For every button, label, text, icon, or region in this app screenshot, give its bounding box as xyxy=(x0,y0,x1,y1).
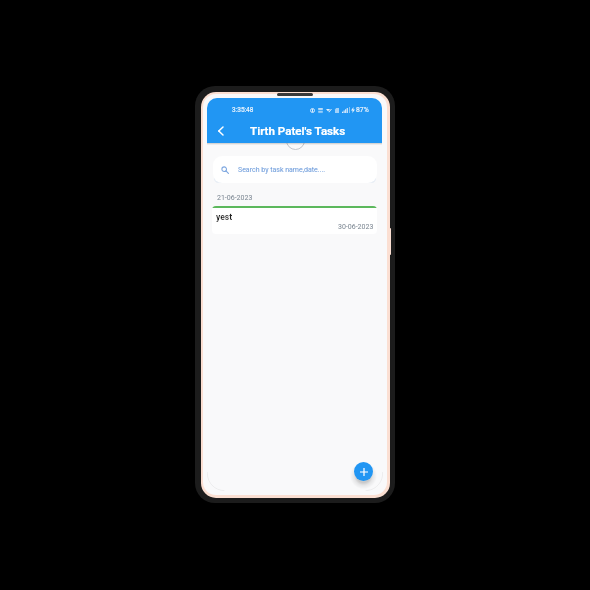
staticText: 87% xyxy=(356,106,369,114)
staticText: 3:35:48 xyxy=(232,106,254,114)
staticText: 21-06-2023 xyxy=(217,194,253,202)
button[interactable]: Add task xyxy=(354,462,373,481)
staticText: yest xyxy=(216,212,233,222)
button[interactable]: Search by task name,date.... xyxy=(213,156,377,183)
button[interactable]: yest xyxy=(212,206,377,234)
staticText: Tirth Patel's Tasks xyxy=(250,124,346,138)
button[interactable]: Back xyxy=(211,122,229,140)
staticText: 30-06-2023 xyxy=(338,223,374,231)
staticText: Search by task name,date.... xyxy=(238,166,326,174)
